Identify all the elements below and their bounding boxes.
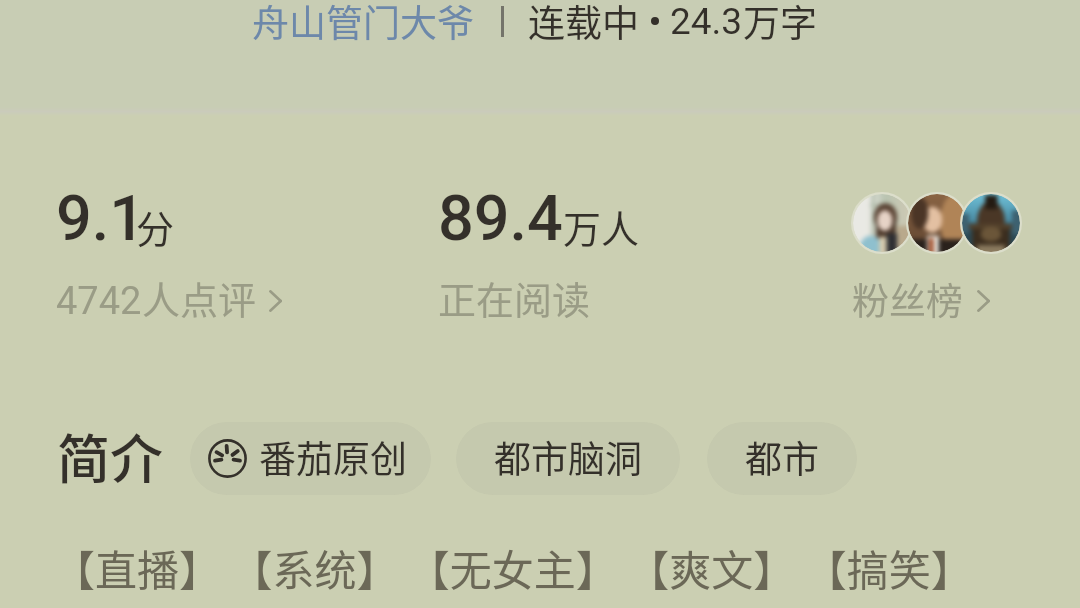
staticText: 万字: [743, 0, 817, 48]
button[interactable]: 舟山管门大爷: [252, 0, 474, 48]
staticText: 粉丝榜: [852, 272, 963, 326]
staticText: 9.1: [56, 182, 146, 256]
button[interactable]: 都市: [707, 422, 857, 495]
button[interactable]: 9.1: [40, 172, 306, 332]
button[interactable]: 【直播】 【系统】 【无女主】 【爽文】 【搞笑】: [53, 537, 973, 598]
button[interactable]: 粉丝榜: [838, 180, 1038, 332]
button[interactable]: 89.4: [422, 172, 662, 332]
staticText: 89.4: [438, 182, 563, 256]
staticText: 番茄原创: [259, 430, 407, 484]
staticText: 【直播】 【系统】 【无女主】 【爽文】 【搞笑】: [53, 537, 973, 598]
staticText: 24.3: [670, 0, 743, 43]
staticText: 都市脑洞: [494, 430, 642, 484]
button[interactable]: 简介: [57, 418, 163, 495]
button[interactable]: 都市脑洞: [456, 422, 680, 495]
staticText: 正在阅读: [438, 270, 591, 325]
staticText: 都市: [745, 430, 819, 484]
staticText: 4742: [56, 279, 142, 324]
staticText: 连载中: [528, 0, 639, 48]
staticText: 人点评: [142, 270, 257, 325]
staticText: 万人: [563, 199, 640, 254]
staticText: 分: [136, 199, 175, 254]
button[interactable]: 番茄原创: [190, 422, 431, 495]
